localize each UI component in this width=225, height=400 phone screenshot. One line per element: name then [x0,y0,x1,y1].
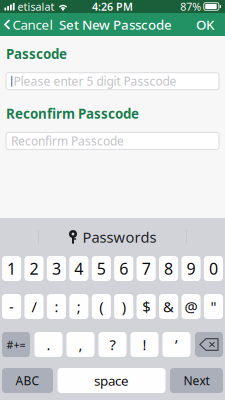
button[interactable]: ( [92,294,111,319]
button[interactable]: 6 [114,256,133,281]
staticText: ! [142,335,146,354]
staticText: Next [183,372,209,388]
staticText: , [78,335,82,354]
staticText: 9 [186,258,195,279]
button[interactable]: - [2,294,21,319]
staticText: ? [109,335,115,354]
staticText: Set New Passcode [59,16,172,33]
staticText: : [54,297,58,316]
staticText: & [163,297,174,316]
staticText: etisalat [17,0,54,14]
button[interactable]: ) [114,294,133,319]
staticText: Cancel [12,16,52,33]
button[interactable]: Passwords [58,224,166,250]
staticText: " [210,297,216,316]
button[interactable]: 0 [204,256,223,281]
button[interactable]: ; [69,294,88,319]
staticText: OK [196,16,214,33]
button[interactable]: ? [98,332,126,357]
button[interactable]: : [47,294,66,319]
button[interactable]: ABC [2,368,53,393]
staticText: 1 [7,258,16,279]
button[interactable]: Symbols [2,332,30,357]
staticText: ) [122,297,126,316]
staticText: Passwords [82,227,156,247]
staticText: Passcode [6,45,67,63]
staticText: 0 [209,258,218,279]
staticText: space [94,372,129,389]
staticText: 4:26 PM [92,0,133,14]
button[interactable]: 4 [69,256,88,281]
staticText: $ [142,297,150,316]
button[interactable]: ! [130,332,158,357]
button[interactable]: $ [137,294,156,319]
staticText: 8 [164,258,173,279]
staticText: 87% [180,0,201,14]
staticText: 3 [52,258,61,279]
staticText: 4 [74,258,83,279]
button[interactable]: Delete [195,332,223,357]
staticText: 5 [97,258,106,279]
button[interactable]: OK [189,13,225,36]
staticText: 7 [142,258,151,279]
button[interactable]: Next [170,368,223,393]
staticText: ABC [15,372,39,388]
staticText: / [31,297,36,316]
button[interactable]: 5 [92,256,111,281]
button[interactable]: , [66,332,94,357]
staticText: Reconfirm Passcode [11,133,124,149]
staticText: Please enter 5 digit Passcode [13,73,176,89]
staticText: 6 [119,258,128,279]
button[interactable]: & [159,294,178,319]
button[interactable]: 9 [181,256,200,281]
staticText: Reconfirm Passcode [6,105,139,122]
button[interactable]: . [34,332,62,357]
button[interactable]: ’ [162,332,190,357]
staticText: ( [99,297,103,316]
button[interactable]: " [204,294,223,319]
staticText: @ [184,297,197,316]
staticText: . [46,335,50,354]
button[interactable]: 2 [24,256,43,281]
staticText: 2 [29,258,38,279]
button[interactable]: @ [181,294,200,319]
staticText: ; [77,297,81,316]
button[interactable]: 1 [2,256,21,281]
button[interactable]: 3 [47,256,66,281]
button[interactable]: 8 [159,256,178,281]
button[interactable]: space [57,368,165,393]
button[interactable]: Cancel [0,13,58,36]
staticText: ’ [175,335,178,354]
button[interactable]: / [24,294,43,319]
staticText: #+= [6,337,25,352]
staticText: - [9,297,14,316]
button[interactable]: 7 [137,256,156,281]
